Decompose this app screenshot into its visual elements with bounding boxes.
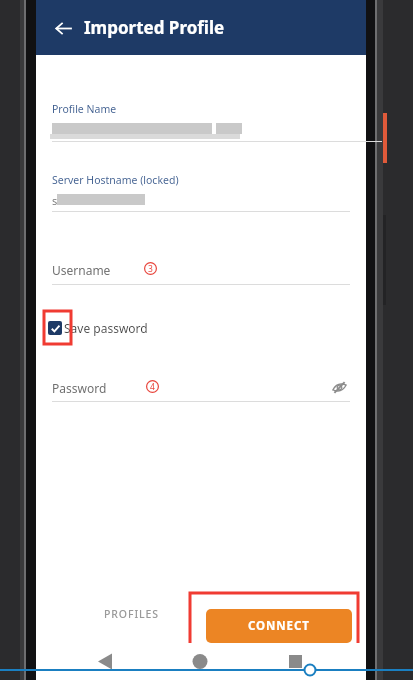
staticText: Server Hostname (locked) <box>52 173 179 187</box>
staticText: Profile Name <box>52 102 117 116</box>
button[interactable]: Save password <box>45 312 148 344</box>
staticText: Password <box>52 380 107 396</box>
button[interactable]: CONNECT <box>206 609 352 643</box>
staticText: CONNECT <box>248 618 310 634</box>
staticText: PROFILES <box>104 607 159 621</box>
button[interactable]: Back <box>46 11 80 45</box>
button[interactable]: PROFILES <box>86 600 176 628</box>
staticText: Username <box>52 262 111 278</box>
staticText: 3 <box>148 263 153 275</box>
staticText: Save password <box>64 320 148 336</box>
staticText: 4 <box>150 381 155 393</box>
staticText: s <box>52 193 58 208</box>
staticText: Imported Profile <box>84 16 225 39</box>
button[interactable]: Show password <box>325 373 353 401</box>
